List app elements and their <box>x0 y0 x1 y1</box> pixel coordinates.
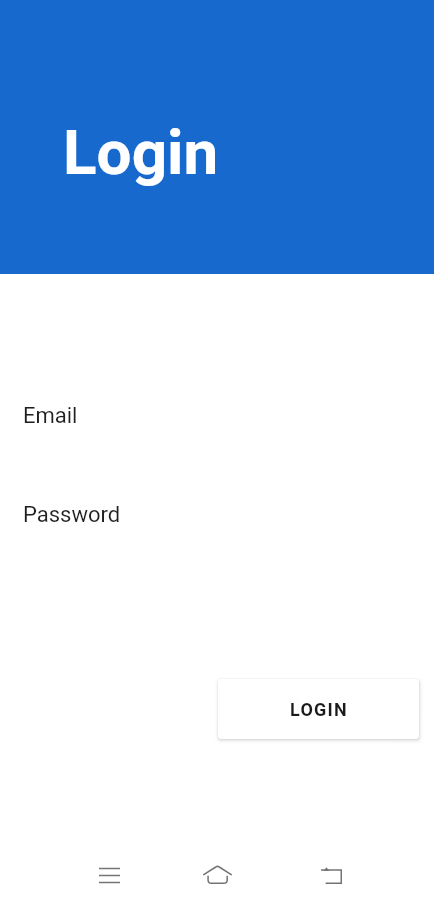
button[interactable]: Home <box>190 847 245 900</box>
button[interactable]: Back <box>304 848 359 900</box>
staticText: Password <box>23 502 121 528</box>
staticText: LOGIN <box>290 699 348 720</box>
staticText: Email <box>23 403 78 429</box>
button[interactable]: LOGIN <box>218 679 419 739</box>
button[interactable]: Password <box>0 486 434 542</box>
staticText: Login <box>63 116 219 189</box>
button[interactable]: Recent apps <box>82 848 137 900</box>
button[interactable]: Email <box>0 387 434 443</box>
